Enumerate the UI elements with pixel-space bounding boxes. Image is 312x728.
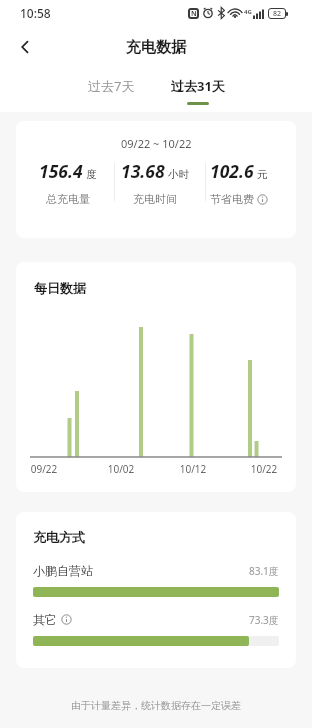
staticText: 小鹏自营站 <box>33 563 93 578</box>
staticText: 10/22 <box>244 462 284 476</box>
button[interactable]: 09/22 ~ 10/22 <box>16 121 296 238</box>
staticText: 73.3度 <box>249 613 279 627</box>
button[interactable]: 每日数据 <box>16 262 296 492</box>
staticText: 每日数据 <box>34 280 86 296</box>
staticText: 09/22 <box>24 462 64 476</box>
staticText: 过去31天 <box>171 77 225 95</box>
staticText: N <box>191 9 197 19</box>
staticText: 82 <box>273 9 282 19</box>
staticText: 度 <box>86 168 97 181</box>
staticText: 4G <box>244 8 252 16</box>
staticText: 10/02 <box>101 462 141 476</box>
staticText: 总充电量 <box>46 192 90 206</box>
staticText: 09/22 ~ 10/22 <box>121 136 192 151</box>
button[interactable]: 过去31天 <box>171 77 225 105</box>
staticText: 充电方式 <box>33 529 85 545</box>
button[interactable]: 小鹏自营站 <box>33 563 279 578</box>
staticText: 10/12 <box>173 462 213 476</box>
staticText: 102.6 <box>210 159 254 183</box>
staticText: 其它 <box>33 612 57 627</box>
button[interactable]: 其它 <box>33 612 279 627</box>
staticText: 156.4 <box>39 159 83 183</box>
staticText: 小时 <box>168 168 189 181</box>
staticText: 由于计量差异，统计数据存在一定误差 <box>71 699 241 712</box>
staticText: 过去7天 <box>88 77 135 95</box>
staticText: 10:58 <box>20 5 51 21</box>
button[interactable]: 过去7天 <box>88 77 135 95</box>
staticText: 83.1度 <box>249 564 279 578</box>
staticText: 元 <box>257 168 268 181</box>
staticText: 充电数据 <box>126 38 186 57</box>
button[interactable] <box>18 40 32 54</box>
staticText: 13.68 <box>121 159 165 183</box>
staticText: 节省电费 <box>210 192 254 206</box>
staticText: 充电时间 <box>133 192 177 206</box>
